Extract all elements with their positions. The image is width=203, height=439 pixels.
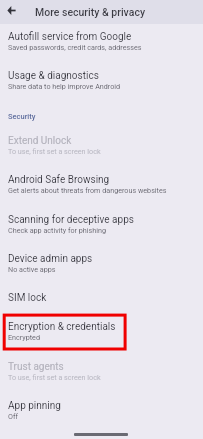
staticText: Trust agents: [8, 361, 64, 373]
staticText: Off: [8, 412, 18, 420]
staticText: Scanning for deceptive apps: [8, 214, 134, 226]
button[interactable]: Usage & diagnostics: [0, 63, 203, 102]
staticText: Autofill service from Google: [8, 31, 132, 43]
staticText: SIM lock: [8, 292, 47, 304]
button[interactable]: Encryption & credentials: [0, 314, 203, 354]
staticText: Device admin apps: [8, 253, 93, 265]
button[interactable]: Back: [0, 0, 23, 22]
button[interactable]: Android Safe Browsing: [0, 167, 203, 207]
staticText: No active apps: [8, 265, 56, 273]
staticText: Share data to help improve Android: [8, 82, 121, 90]
staticText: Usage & diagnostics: [8, 70, 99, 82]
staticText: To use, first set a screen lock: [8, 373, 101, 381]
button[interactable]: SIM lock: [0, 285, 203, 314]
button[interactable]: Device admin apps: [0, 246, 203, 285]
button[interactable]: Scanning for deceptive apps: [0, 207, 203, 246]
staticText: More security & privacy: [35, 6, 146, 18]
staticText: To use, first set a screen lock: [8, 147, 101, 155]
staticText: App pinning: [8, 400, 61, 412]
button[interactable]: Trust agents: [0, 354, 203, 394]
staticText: Saved passwords, credit cards, addresses: [8, 43, 142, 51]
staticText: Security: [8, 112, 36, 121]
staticText: Android Safe Browsing: [8, 174, 110, 186]
staticText: Get alerts about threats from dangerous …: [8, 186, 167, 194]
button[interactable]: Extend Unlock: [0, 128, 203, 167]
staticText: Encrypted: [8, 333, 40, 341]
button[interactable]: Autofill service from Google: [0, 24, 203, 63]
staticText: Extend Unlock: [8, 135, 72, 147]
staticText: Encryption & credentials: [8, 321, 116, 333]
staticText: Check app activity for phishing: [8, 226, 106, 234]
button[interactable]: App pinning: [0, 393, 203, 433]
